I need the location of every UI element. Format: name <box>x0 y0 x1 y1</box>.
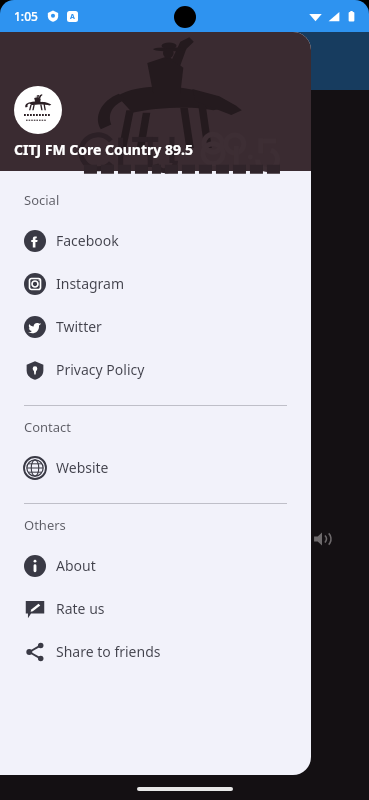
staticText: Social <box>24 191 60 209</box>
staticText: CITJ FM Core Country 89.5 <box>14 140 193 159</box>
staticText: 1:05 <box>14 8 38 24</box>
staticText: Privacy Policy <box>56 360 145 379</box>
button[interactable]: Facebook <box>0 219 311 262</box>
button[interactable]: About <box>0 544 311 587</box>
button[interactable]: Privacy Policy <box>0 348 311 391</box>
button[interactable]: Rate us <box>0 587 311 630</box>
staticText: About <box>56 556 96 575</box>
staticText: Twitter <box>56 317 102 336</box>
button[interactable]: Share to friends <box>0 630 311 673</box>
staticText: A <box>70 12 75 22</box>
staticText: Rate us <box>56 599 105 618</box>
button[interactable]: Volume <box>311 528 333 550</box>
staticText: Facebook <box>56 231 119 250</box>
button[interactable]: Website <box>0 446 311 489</box>
staticText: Share to friends <box>56 642 161 661</box>
staticText: Others <box>24 516 66 534</box>
staticText: Instagram <box>56 274 125 293</box>
staticText: Website <box>56 458 109 477</box>
button[interactable]: Twitter <box>0 305 311 348</box>
staticText: Contact <box>24 418 72 436</box>
button[interactable]: Instagram <box>0 262 311 305</box>
